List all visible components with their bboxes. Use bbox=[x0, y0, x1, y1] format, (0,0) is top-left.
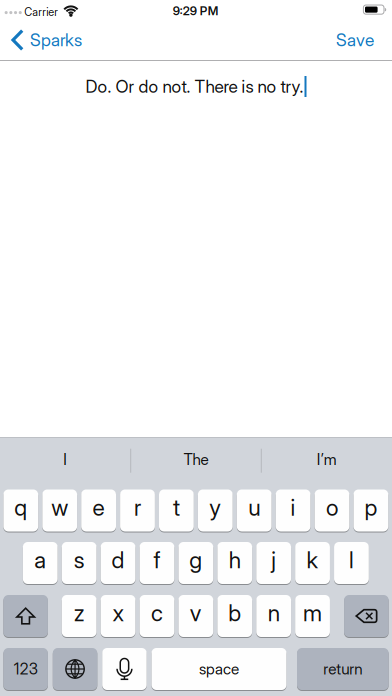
staticText: Carrier bbox=[24, 5, 58, 19]
staticText: Do. Or do not. There is no try. bbox=[85, 76, 303, 97]
staticText: y bbox=[209, 494, 221, 521]
button[interactable]: a bbox=[23, 541, 58, 584]
staticText: w bbox=[51, 494, 68, 521]
button[interactable]: u bbox=[237, 489, 272, 532]
staticText: The bbox=[183, 450, 208, 469]
staticText: e bbox=[93, 494, 105, 521]
staticText: 123 bbox=[14, 660, 38, 678]
button[interactable]: return bbox=[297, 647, 389, 690]
staticText: j bbox=[271, 546, 276, 574]
staticText: Save bbox=[336, 29, 374, 50]
button[interactable]: The bbox=[136, 441, 256, 477]
staticText: I’m bbox=[317, 450, 337, 469]
button[interactable]: s bbox=[62, 541, 97, 584]
button[interactable]: Save bbox=[336, 29, 392, 50]
staticText: f bbox=[153, 546, 160, 574]
button[interactable]: o bbox=[315, 489, 349, 532]
staticText: v bbox=[190, 599, 202, 627]
button[interactable]: p bbox=[353, 489, 388, 532]
button[interactable]: y bbox=[198, 489, 233, 532]
staticText: x bbox=[112, 599, 123, 627]
button[interactable]: v bbox=[178, 594, 213, 637]
button[interactable]: t bbox=[159, 489, 194, 532]
button[interactable]: f bbox=[139, 541, 174, 584]
staticText: m bbox=[303, 599, 322, 627]
staticText: c bbox=[151, 599, 163, 627]
staticText: d bbox=[111, 546, 124, 574]
staticText: return bbox=[323, 660, 362, 678]
staticText: I bbox=[63, 450, 67, 469]
button[interactable]: n bbox=[256, 594, 291, 637]
staticText: h bbox=[229, 546, 241, 574]
staticText: n bbox=[268, 599, 280, 627]
button[interactable]: g bbox=[178, 541, 213, 584]
staticText: b bbox=[228, 599, 241, 627]
button[interactable]: b bbox=[217, 594, 252, 637]
staticText: o bbox=[326, 494, 338, 521]
staticText: r bbox=[134, 494, 141, 521]
button[interactable]: z bbox=[62, 594, 96, 637]
button[interactable]: Delete bbox=[344, 594, 389, 637]
staticText: l bbox=[349, 546, 354, 574]
button[interactable]: m bbox=[295, 594, 330, 637]
staticText: s bbox=[74, 546, 85, 574]
button[interactable]: h bbox=[217, 541, 252, 584]
button[interactable]: w bbox=[42, 489, 77, 532]
staticText: t bbox=[173, 494, 180, 521]
staticText: i bbox=[291, 494, 296, 521]
button[interactable]: 123 bbox=[3, 647, 48, 690]
button[interactable]: x bbox=[101, 594, 135, 637]
staticText: k bbox=[307, 546, 319, 574]
staticText: a bbox=[34, 546, 46, 574]
staticText: z bbox=[74, 599, 85, 627]
button[interactable]: Next keyboard bbox=[53, 647, 97, 690]
staticText: space bbox=[199, 660, 239, 678]
staticText: u bbox=[248, 494, 260, 521]
button[interactable]: k bbox=[295, 541, 330, 584]
button[interactable]: i bbox=[276, 489, 310, 532]
button[interactable]: j bbox=[256, 541, 291, 584]
staticText: Sparks bbox=[30, 29, 82, 50]
button[interactable]: space bbox=[151, 647, 286, 690]
button[interactable]: d bbox=[101, 541, 135, 584]
button[interactable]: Sparks bbox=[0, 29, 82, 51]
staticText: g bbox=[189, 546, 202, 574]
button[interactable]: I bbox=[5, 441, 125, 477]
button[interactable]: c bbox=[139, 594, 174, 637]
staticText: 9:29 PM bbox=[173, 4, 219, 18]
button[interactable]: q bbox=[3, 489, 38, 532]
button[interactable]: Dictate bbox=[102, 647, 147, 690]
button[interactable]: r bbox=[120, 489, 155, 532]
button[interactable]: e bbox=[81, 489, 116, 532]
button[interactable]: l bbox=[334, 541, 369, 584]
staticText: q bbox=[14, 494, 27, 521]
button[interactable]: I’m bbox=[267, 441, 387, 477]
staticText: p bbox=[364, 494, 377, 521]
button[interactable]: Shift bbox=[3, 594, 48, 637]
